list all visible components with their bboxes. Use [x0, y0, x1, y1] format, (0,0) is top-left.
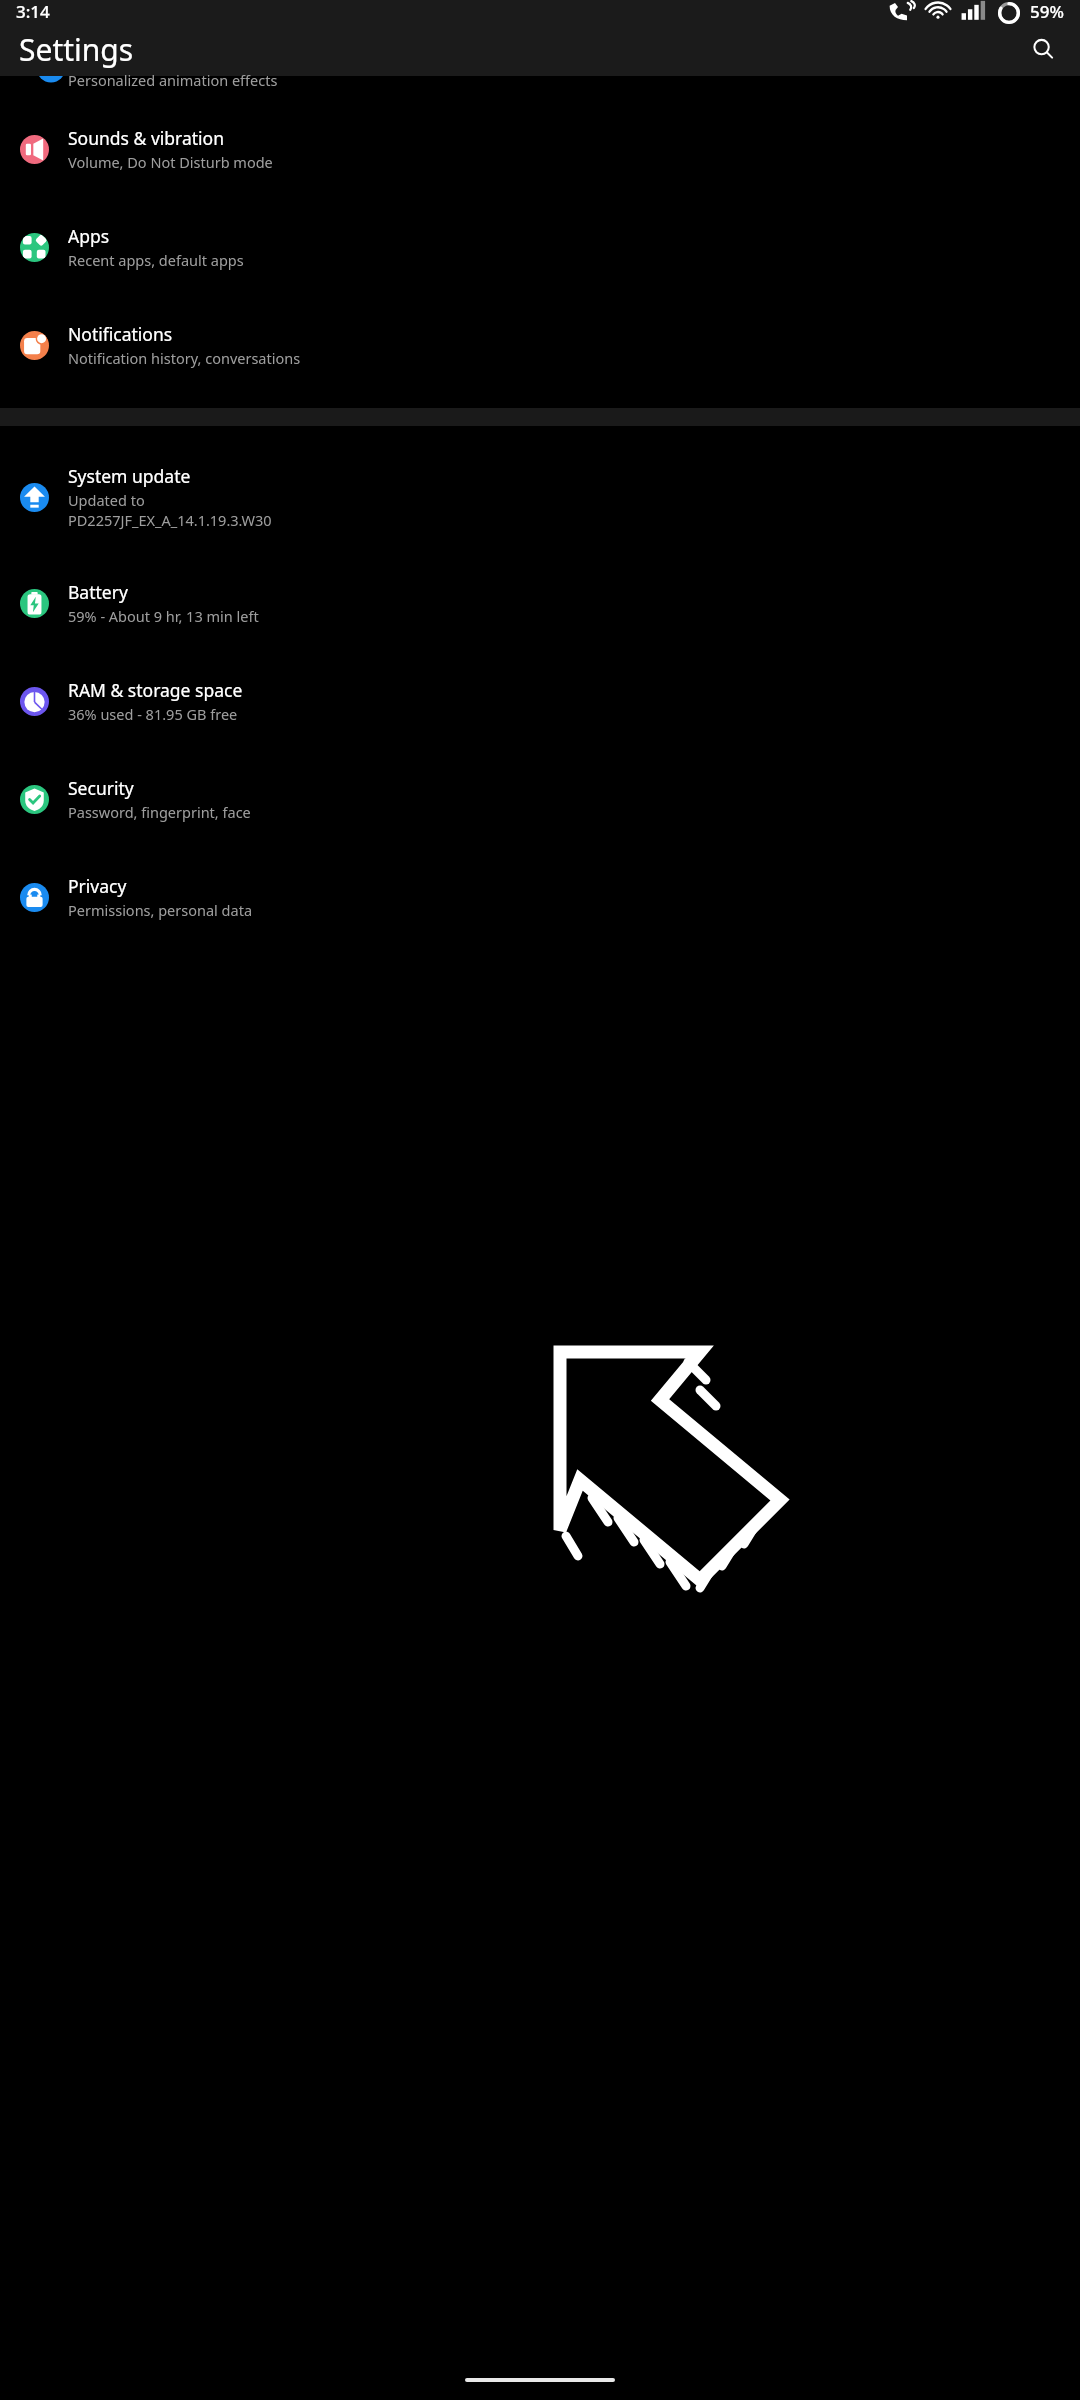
staticText: Battery: [68, 580, 128, 604]
button[interactable]: Sounds & vibration: [0, 100, 1080, 198]
staticText: Password, fingerprint, face: [68, 802, 251, 822]
staticText: Privacy: [68, 874, 127, 898]
button[interactable]: Personalized animation effects: [0, 76, 1080, 100]
button[interactable]: Privacy: [0, 848, 1080, 946]
button[interactable]: RAM & storage space: [0, 652, 1080, 750]
staticText: 3:14: [16, 0, 50, 22]
button[interactable]: Apps: [0, 198, 1080, 296]
button[interactable]: Battery: [0, 554, 1080, 652]
staticText: Notification history, conversations: [68, 348, 301, 368]
button[interactable]: Search settings: [1026, 32, 1060, 66]
staticText: Recent apps, default apps: [68, 250, 244, 270]
button[interactable]: Notifications: [0, 296, 1080, 394]
staticText: Apps: [68, 224, 110, 248]
staticText: Updated to PD2257JF_EX_A_14.1.19.3.W30: [68, 490, 272, 530]
staticText: 36% used - 81.95 GB free: [68, 704, 238, 724]
staticText: Sounds & vibration: [68, 126, 224, 150]
staticText: 59%: [1030, 0, 1064, 22]
button[interactable]: Security: [0, 750, 1080, 848]
staticText: Permissions, personal data: [68, 900, 253, 920]
staticText: RAM & storage space: [68, 678, 243, 702]
staticText: Settings: [19, 29, 134, 70]
staticText: System update: [68, 464, 191, 488]
staticText: Volume, Do Not Disturb mode: [68, 152, 273, 172]
staticText: Personalized animation effects: [68, 70, 278, 90]
staticText: Security: [68, 776, 134, 800]
staticText: 59% - About 9 hr, 13 min left: [68, 606, 259, 626]
button[interactable]: System update: [0, 440, 1080, 554]
staticText: Notifications: [68, 322, 173, 346]
